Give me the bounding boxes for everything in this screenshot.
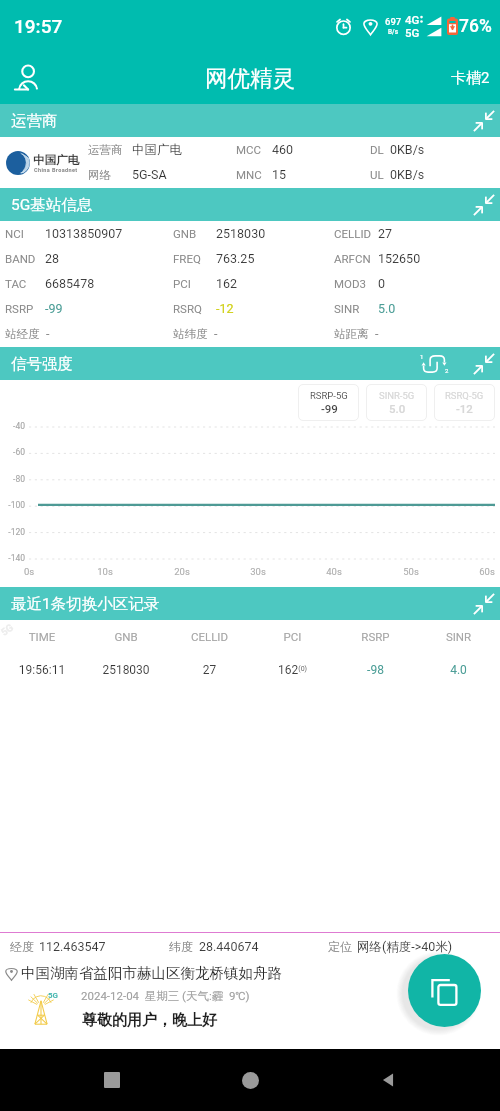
staticText: 5.0 xyxy=(378,301,396,316)
staticText: CELLID xyxy=(334,227,372,240)
button[interactable]: RSRP-5G xyxy=(298,384,359,421)
staticText: 2024-12-04 星期三 (天气:霾 9℃) xyxy=(81,989,250,1003)
staticText: 卡槽2 xyxy=(451,69,490,88)
staticText: 中国广电 xyxy=(132,142,182,158)
staticText: 经度 xyxy=(10,939,34,954)
staticText: 5G xyxy=(0,621,16,639)
staticText: 2 xyxy=(445,367,449,374)
staticText: 112.463547 xyxy=(39,939,106,954)
staticText: GNB xyxy=(84,630,168,643)
staticText: 152650 xyxy=(378,251,421,266)
staticText: 运营商 xyxy=(88,143,123,157)
staticText: 40s xyxy=(319,566,349,577)
button[interactable]: Home xyxy=(224,1054,276,1106)
button[interactable]: Account xyxy=(6,55,52,101)
staticText: 网络(精度->40米) xyxy=(357,939,453,955)
staticText: 60s xyxy=(472,566,500,577)
staticText: 697 xyxy=(385,16,402,27)
staticText: 0s xyxy=(14,566,44,577)
staticText: PCI xyxy=(173,277,191,290)
staticText: -40 xyxy=(0,421,25,431)
staticText: 460 xyxy=(272,142,294,157)
staticText: 中国湖南省益阳市赫山区衡龙桥镇如舟路 xyxy=(21,964,282,982)
staticText: 0 xyxy=(378,276,386,291)
staticText: 纬度 xyxy=(169,939,193,954)
button[interactable]: Collapse section xyxy=(467,104,500,137)
button[interactable]: Switch SIM card xyxy=(415,347,453,380)
staticText: RSRP-5G xyxy=(310,390,348,401)
staticText: SINR-5G xyxy=(379,390,415,401)
button[interactable]: Collapse section xyxy=(467,347,500,380)
staticText: SINR xyxy=(334,302,360,315)
button[interactable]: Collapse section xyxy=(467,587,500,620)
staticText: -99 xyxy=(45,301,63,316)
staticText: 20s xyxy=(167,566,197,577)
staticText: -80 xyxy=(0,474,25,484)
staticText: RSRQ xyxy=(173,302,202,315)
staticText: 站距离 xyxy=(334,327,369,341)
staticText: MOD3 xyxy=(334,277,366,290)
button[interactable]: Recent apps xyxy=(86,1054,138,1106)
staticText: -98 xyxy=(334,663,417,677)
staticText: 网络 xyxy=(88,168,111,182)
staticText: 30s xyxy=(243,566,273,577)
staticText: 1 xyxy=(420,353,424,360)
staticText: 6685478 xyxy=(45,276,95,291)
staticText: 27 xyxy=(168,663,251,677)
staticText: 19:57 xyxy=(14,15,63,37)
staticText: TAC xyxy=(5,277,27,290)
staticText: TIME xyxy=(0,630,84,643)
button[interactable]: Back xyxy=(362,1054,414,1106)
staticText: 0KB/s xyxy=(390,142,425,157)
staticText: UL xyxy=(370,168,384,181)
staticText: 2518030 xyxy=(216,226,266,241)
staticText: 站纬度 xyxy=(173,327,208,341)
staticText: MCC xyxy=(236,143,262,156)
staticText: GNB xyxy=(173,227,197,240)
staticText: SINR xyxy=(417,630,500,643)
staticText: NCI xyxy=(5,227,24,240)
staticText: 中国广电 xyxy=(33,153,79,167)
button[interactable]: SINR-5G xyxy=(366,384,427,421)
staticText: 50s xyxy=(396,566,426,577)
staticText: 2518030 xyxy=(84,663,168,677)
staticText: 10313850907 xyxy=(45,226,123,241)
staticText: 信号强度 xyxy=(11,354,73,374)
staticText: 15 xyxy=(272,167,287,182)
staticText: BAND xyxy=(5,252,36,265)
staticText: - xyxy=(375,326,379,341)
staticText: -12 xyxy=(456,402,473,415)
staticText: 5G xyxy=(48,991,59,1000)
staticText: DL xyxy=(370,143,384,156)
staticText: B/s xyxy=(388,28,399,36)
staticText: 站经度 xyxy=(5,327,40,341)
button[interactable]: RSRQ-5G xyxy=(434,384,495,421)
staticText: RSRP xyxy=(5,302,34,315)
staticText: RSRP xyxy=(334,630,417,643)
staticText: FREQ xyxy=(173,252,201,265)
staticText: 尊敬的用户，晚上好 xyxy=(82,1011,217,1030)
button[interactable]: 卡槽2 xyxy=(441,61,500,96)
staticText: 162(0) xyxy=(278,663,307,677)
staticText: 定位 xyxy=(328,939,352,954)
staticText: 运营商 xyxy=(11,111,58,131)
staticText: 5G xyxy=(405,26,420,39)
staticText: - xyxy=(214,326,218,341)
staticText: -100 xyxy=(0,500,25,510)
staticText: ARFCN xyxy=(334,252,371,265)
staticText: MNC xyxy=(236,168,262,181)
staticText: 4.0 xyxy=(417,663,500,677)
staticText: 162 xyxy=(216,276,238,291)
staticText: -120 xyxy=(0,527,25,537)
staticText: 最近1条切换小区记录 xyxy=(11,594,160,614)
staticText: 27 xyxy=(378,226,393,241)
staticText: 5.0 xyxy=(389,402,406,415)
button[interactable]: Collapse section xyxy=(467,188,500,221)
staticText: 28.440674 xyxy=(199,939,259,954)
staticText: RSRQ-5G xyxy=(445,390,484,401)
staticText: -60 xyxy=(0,447,25,457)
staticText: 28 xyxy=(45,251,60,266)
staticText: - xyxy=(46,326,50,341)
staticText: 5G基站信息 xyxy=(11,195,93,215)
button[interactable]: Copy information xyxy=(408,954,481,1027)
